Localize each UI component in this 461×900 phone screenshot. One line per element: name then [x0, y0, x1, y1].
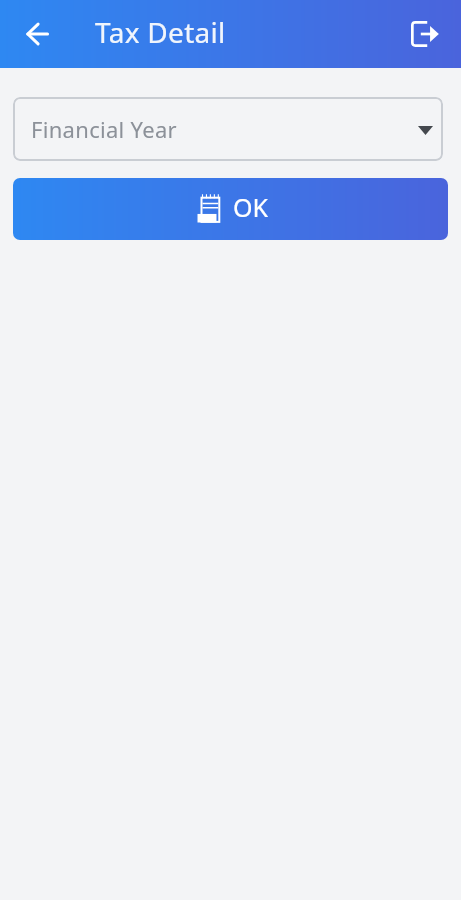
button[interactable]: OK: [13, 178, 448, 240]
button[interactable]: Back: [14, 11, 60, 57]
staticText: Financial Year: [31, 114, 177, 144]
button[interactable]: Financial Year: [13, 97, 443, 161]
button[interactable]: Logout: [402, 11, 448, 57]
staticText: Tax Detail: [95, 13, 226, 51]
staticText: OK: [233, 190, 269, 224]
